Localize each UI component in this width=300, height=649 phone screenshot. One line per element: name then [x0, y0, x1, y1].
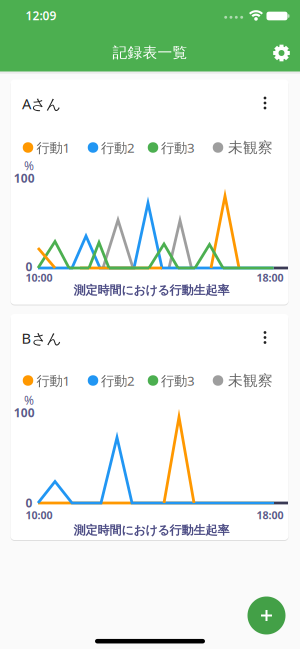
staticText: 行動2 — [101, 372, 135, 389]
staticText: 行動1 — [36, 139, 70, 156]
staticText: 測定時間における行動生起率 — [73, 523, 229, 538]
button[interactable]: More options — [255, 327, 275, 347]
staticText: 行動1 — [36, 372, 70, 389]
staticText: 18:00 — [256, 270, 283, 285]
staticText: 0 — [25, 258, 32, 274]
staticText: 行動3 — [161, 372, 195, 389]
staticText: % — [24, 157, 34, 173]
staticText: 10:00 — [25, 508, 52, 522]
staticText: Aさん — [22, 94, 61, 113]
staticText: 記録表一覧 — [112, 43, 187, 61]
staticText: 10:00 — [25, 270, 52, 285]
staticText: 100 — [14, 170, 35, 186]
staticText: 未観察 — [228, 371, 273, 389]
staticText: 18:00 — [256, 508, 283, 522]
button[interactable]: Settings — [266, 38, 296, 68]
button[interactable]: Aさん — [10, 79, 288, 304]
staticText: 行動3 — [161, 139, 195, 156]
staticText: 100 — [14, 404, 35, 420]
staticText: Bさん — [21, 328, 61, 348]
button[interactable]: Bさん — [10, 314, 288, 540]
staticText: 未観察 — [228, 138, 273, 156]
staticText: 0 — [25, 495, 32, 511]
staticText: 行動2 — [101, 139, 135, 156]
staticText: 測定時間における行動生起率 — [73, 283, 229, 298]
button[interactable]: Add — [247, 596, 285, 634]
staticText: % — [24, 392, 34, 408]
button[interactable]: More options — [255, 93, 275, 113]
staticText: 12:09 — [25, 7, 56, 23]
